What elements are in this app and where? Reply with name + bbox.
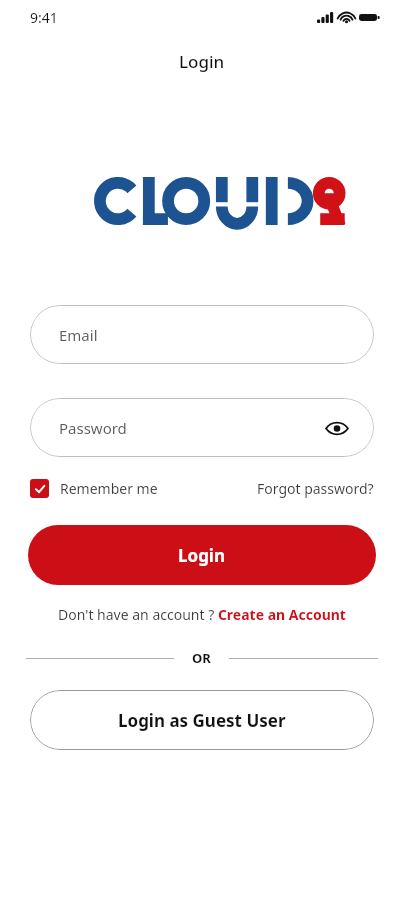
button[interactable]: Show password [322, 413, 352, 443]
button[interactable]: Email [30, 305, 374, 364]
button[interactable]: Login [28, 525, 376, 585]
staticText: Remember me [60, 479, 158, 498]
staticText: Forgot password? [257, 479, 374, 498]
button[interactable]: Don't have an account ? Create an Accoun… [58, 605, 346, 624]
staticText: Email [59, 325, 98, 345]
staticText: Login as Guest User [118, 709, 286, 732]
staticText: Login [179, 50, 225, 73]
staticText: 9:41 [30, 8, 58, 27]
staticText: Login [178, 544, 226, 567]
button[interactable]: Login as Guest User [30, 690, 374, 750]
staticText: OR [192, 649, 211, 667]
button[interactable]: Forgot password? [257, 479, 374, 498]
button[interactable]: Remember me [30, 479, 158, 498]
staticText: Don't have an account ? Create an Accoun… [58, 605, 346, 624]
button[interactable]: Password [30, 398, 374, 457]
staticText: Password [59, 418, 127, 438]
